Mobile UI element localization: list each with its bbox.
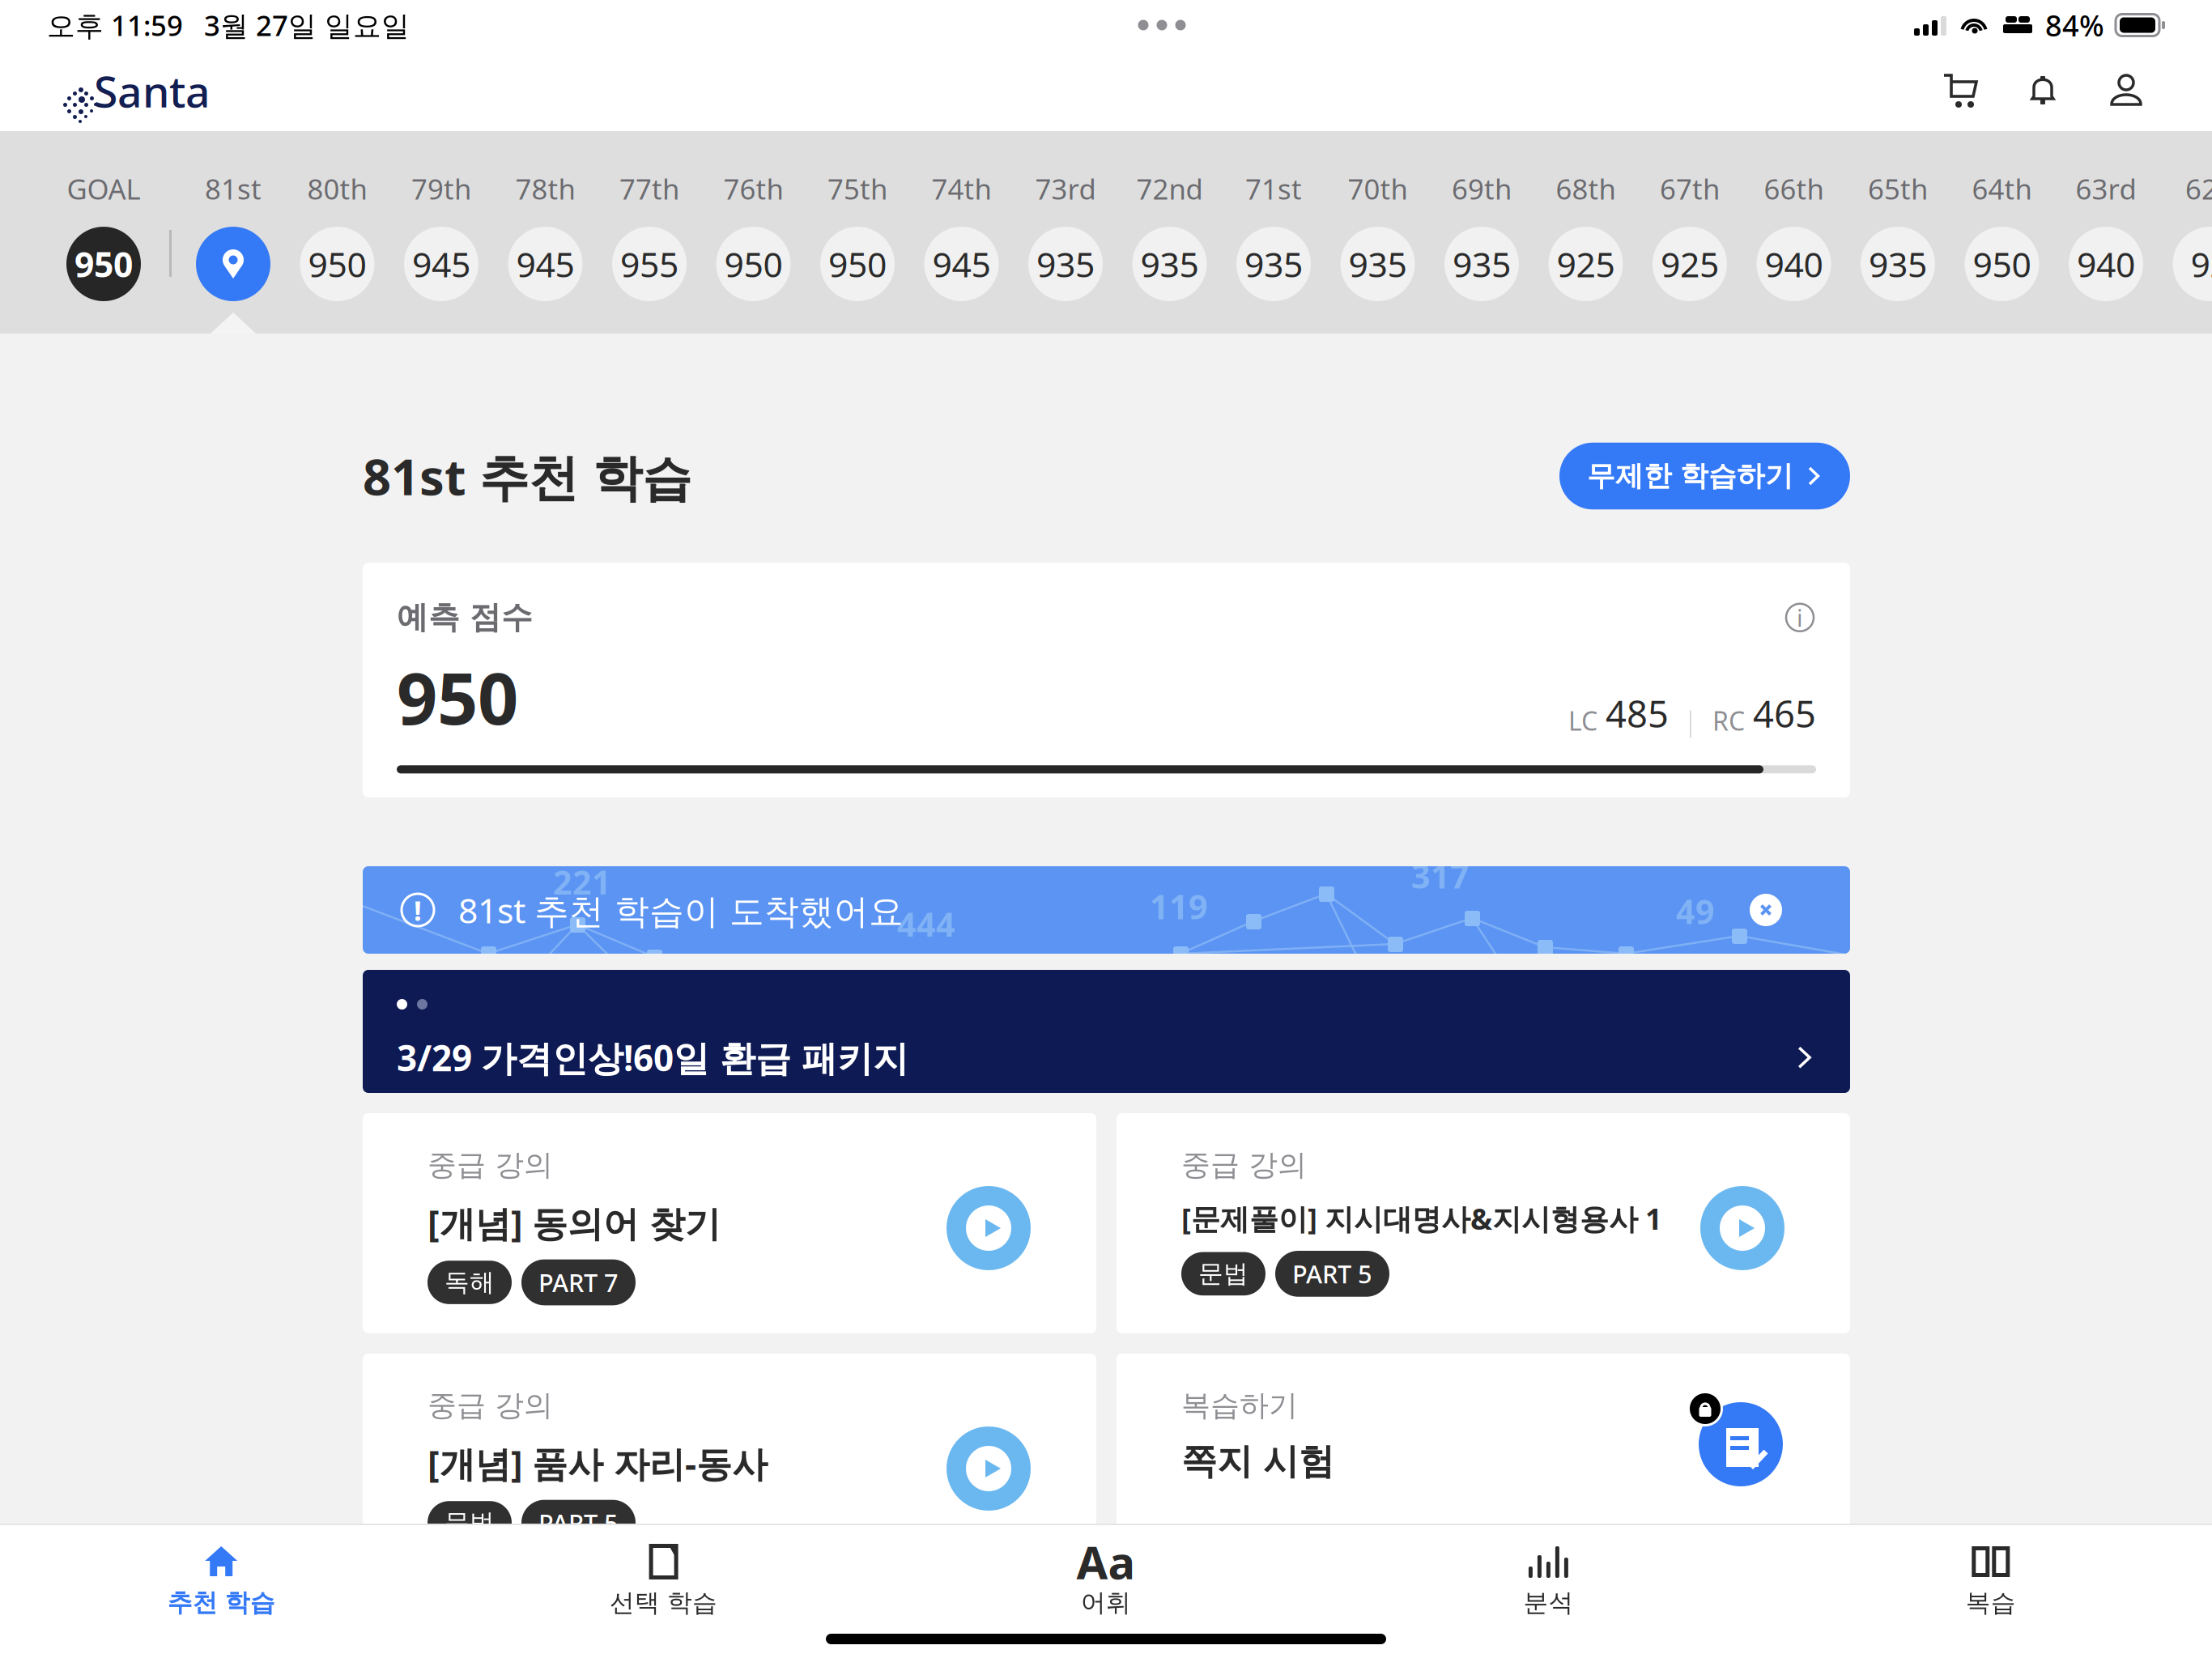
staticText: 75th	[827, 170, 887, 207]
staticText: 80th	[307, 170, 367, 207]
button[interactable]: 64th	[1960, 170, 2044, 301]
staticText: 69th	[1452, 170, 1512, 207]
button[interactable]: 73rd	[1023, 170, 1108, 301]
staticText: 945	[932, 241, 991, 287]
staticText: 465	[1753, 689, 1816, 738]
staticText: 81st 추천 학습	[363, 443, 691, 509]
button[interactable]: 77th	[607, 170, 691, 301]
staticText: 72nd	[1136, 170, 1203, 207]
staticText: PART 5	[1292, 1257, 1372, 1290]
staticText: 945	[412, 241, 470, 287]
staticText: 119	[1150, 884, 1208, 928]
button[interactable]: 80th	[295, 170, 379, 301]
staticText: Aa	[1076, 1532, 1136, 1592]
staticText: i	[1797, 602, 1803, 633]
staticText: 오후 11:59	[47, 6, 183, 44]
staticText: 950	[724, 241, 783, 287]
staticText: GOAL	[67, 170, 140, 207]
staticText: 79th	[411, 170, 471, 207]
staticText: 추천 학습	[167, 1588, 275, 1618]
staticText: PART 7	[538, 1266, 619, 1299]
staticText: 81st	[205, 170, 262, 207]
staticText: 92	[2191, 241, 2212, 287]
staticText: 925	[1661, 241, 1719, 287]
button[interactable]: 75th	[815, 170, 900, 301]
staticText: 955	[620, 241, 678, 287]
staticText: 76th	[723, 170, 783, 207]
button[interactable]: 복습	[1770, 1527, 2212, 1631]
staticText: 71st	[1245, 170, 1302, 207]
staticText: 84%	[2045, 6, 2104, 44]
button[interactable]: 추천 학습	[0, 1527, 442, 1631]
button[interactable]: 76th	[711, 170, 795, 301]
button[interactable]: 무제한 학습하기	[1559, 443, 1850, 509]
button[interactable]: 분석	[1327, 1527, 1770, 1631]
button[interactable]: 선택 학습	[442, 1527, 885, 1631]
button[interactable]: 62n	[2168, 170, 2212, 301]
staticText: 935	[1036, 241, 1095, 287]
button[interactable]: 68th	[1544, 170, 1628, 301]
staticText: 무제한 학습하기	[1587, 459, 1793, 493]
staticText: 3월 27일 일요일	[204, 6, 410, 44]
staticText: 선택 학습	[610, 1588, 717, 1618]
staticText: 예측 점수	[397, 598, 533, 637]
button[interactable]: 74th	[919, 170, 1004, 301]
button[interactable]: 72nd	[1127, 170, 1212, 301]
button[interactable]: 69th	[1440, 170, 1524, 301]
staticText: !	[414, 891, 422, 929]
staticText: 81st 추천 학습이 도착했어요	[458, 887, 904, 933]
button[interactable]: 78th	[503, 170, 587, 301]
button[interactable]: Notifications	[2005, 52, 2082, 130]
button[interactable]: 3/29 가격인상!60일 환급 패키지	[363, 970, 1850, 1093]
staticText: 문법	[1198, 1259, 1249, 1289]
staticText: 65th	[1868, 170, 1928, 207]
staticText: 64th	[1972, 170, 2032, 207]
staticText: 68th	[1556, 170, 1616, 207]
staticText: 독해	[445, 1267, 495, 1298]
button[interactable]: 67th	[1648, 170, 1732, 301]
button[interactable]: Santa	[0, 50, 235, 131]
button[interactable]: 66th	[1752, 170, 1836, 301]
staticText: [문제풀이] 지시대명사&지시형용사 1	[1181, 1199, 1662, 1238]
staticText: 935	[1453, 241, 1511, 287]
button[interactable]: Dismiss	[1749, 893, 1783, 927]
staticText: 62n	[2185, 170, 2212, 207]
staticText: 940	[2077, 241, 2135, 287]
staticText: 중급 강의	[1181, 1147, 1307, 1183]
button[interactable]: 65th	[1856, 170, 1940, 301]
staticText: 중급 강의	[428, 1388, 553, 1423]
staticText: [개념] 동의어 찾기	[428, 1199, 721, 1246]
button[interactable]: 중급 강의	[363, 1113, 1096, 1333]
staticText: 78th	[515, 170, 575, 207]
staticText: 분석	[1523, 1588, 1573, 1618]
button[interactable]: 중급 강의	[363, 1354, 1096, 1574]
button[interactable]: Profile	[2087, 52, 2165, 130]
staticText: 950	[828, 241, 887, 287]
button[interactable]: 79th	[399, 170, 483, 301]
button[interactable]: 221	[363, 866, 1850, 954]
button[interactable]: Cart	[1922, 52, 2000, 130]
staticText: 935	[1869, 241, 1927, 287]
staticText: 485	[1606, 689, 1669, 738]
staticText: PART 5	[538, 1506, 619, 1539]
button[interactable]: 중급 강의	[1117, 1113, 1850, 1333]
button[interactable]: Aa	[885, 1527, 1327, 1631]
staticText: 66th	[1764, 170, 1824, 207]
button[interactable]: 63rd	[2064, 170, 2148, 301]
staticText: 복습	[1966, 1588, 2016, 1618]
staticText: 950	[397, 650, 518, 744]
staticText: 950	[74, 241, 133, 287]
staticText: 77th	[619, 170, 679, 207]
staticText: RC	[1712, 703, 1745, 738]
staticText: 문법	[445, 1508, 495, 1538]
button[interactable]: 71st	[1231, 170, 1316, 301]
button[interactable]: 복습하기	[1117, 1354, 1850, 1574]
staticText: 49	[1676, 889, 1715, 933]
staticText: 221	[553, 860, 611, 904]
staticText: 복습하기	[1181, 1388, 1298, 1423]
staticText: 70th	[1348, 170, 1408, 207]
button[interactable]: 70th	[1336, 170, 1420, 301]
staticText: [개념] 품사 자리-동사	[428, 1440, 768, 1487]
button[interactable]: Info	[1784, 601, 1816, 634]
button[interactable]: 81st	[191, 170, 275, 301]
